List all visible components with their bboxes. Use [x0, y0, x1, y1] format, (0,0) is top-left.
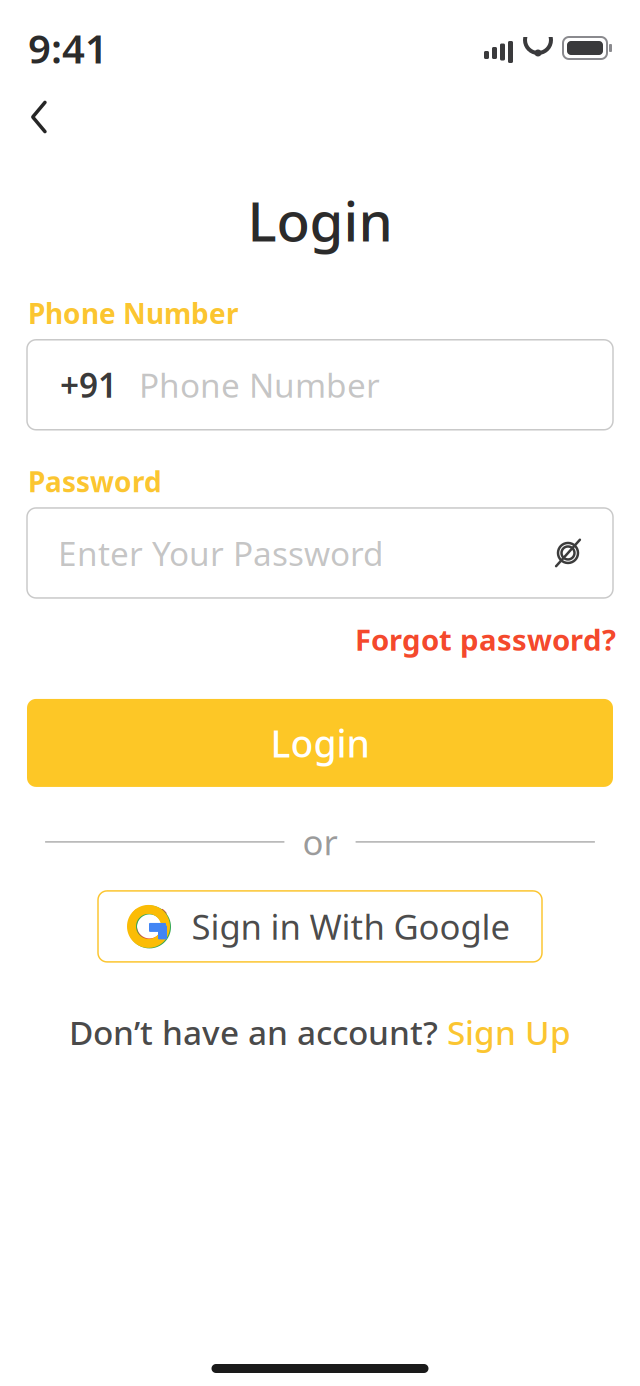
- staticText: or: [302, 819, 337, 865]
- button[interactable]: Back: [16, 94, 62, 140]
- staticText: Password: [28, 463, 162, 500]
- staticText: Enter Your Password: [58, 531, 384, 575]
- staticText: Don’t have an account?: [69, 1010, 447, 1054]
- staticText: 9:41: [28, 21, 108, 74]
- staticText: Login: [270, 718, 369, 768]
- staticText: Phone Number: [139, 363, 380, 407]
- button[interactable]: Login: [27, 699, 613, 787]
- staticText: Sign in With Google: [191, 903, 510, 949]
- staticText: Forgot password?: [355, 620, 616, 659]
- staticText: Login: [247, 184, 392, 257]
- button[interactable]: Sign Up: [447, 1010, 571, 1054]
- staticText: Sign Up: [447, 1010, 571, 1054]
- button[interactable]: Show password: [539, 524, 597, 582]
- button[interactable]: Forgot password?: [355, 612, 616, 667]
- staticText: +91: [60, 363, 117, 407]
- button[interactable]: Sign in With Google: [98, 891, 542, 962]
- staticText: Phone Number: [28, 295, 239, 332]
